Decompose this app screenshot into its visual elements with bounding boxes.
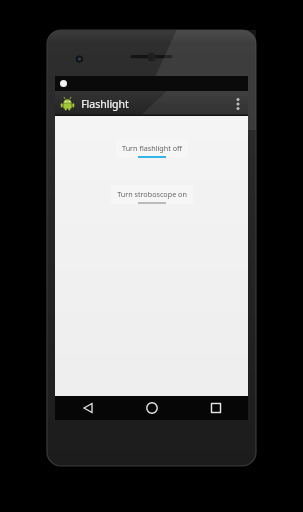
button[interactable]: Recent apps [184, 396, 248, 420]
button[interactable]: Back [55, 396, 120, 420]
staticText: Turn stroboscope on [117, 189, 187, 199]
staticText: Flashlight [81, 97, 129, 111]
button[interactable]: Turn flashlight off [116, 139, 188, 158]
button[interactable]: More options [228, 91, 248, 116]
button[interactable]: Home [120, 396, 184, 420]
staticText: Turn flashlight off [122, 143, 182, 153]
button[interactable]: Turn stroboscope on [111, 185, 193, 204]
